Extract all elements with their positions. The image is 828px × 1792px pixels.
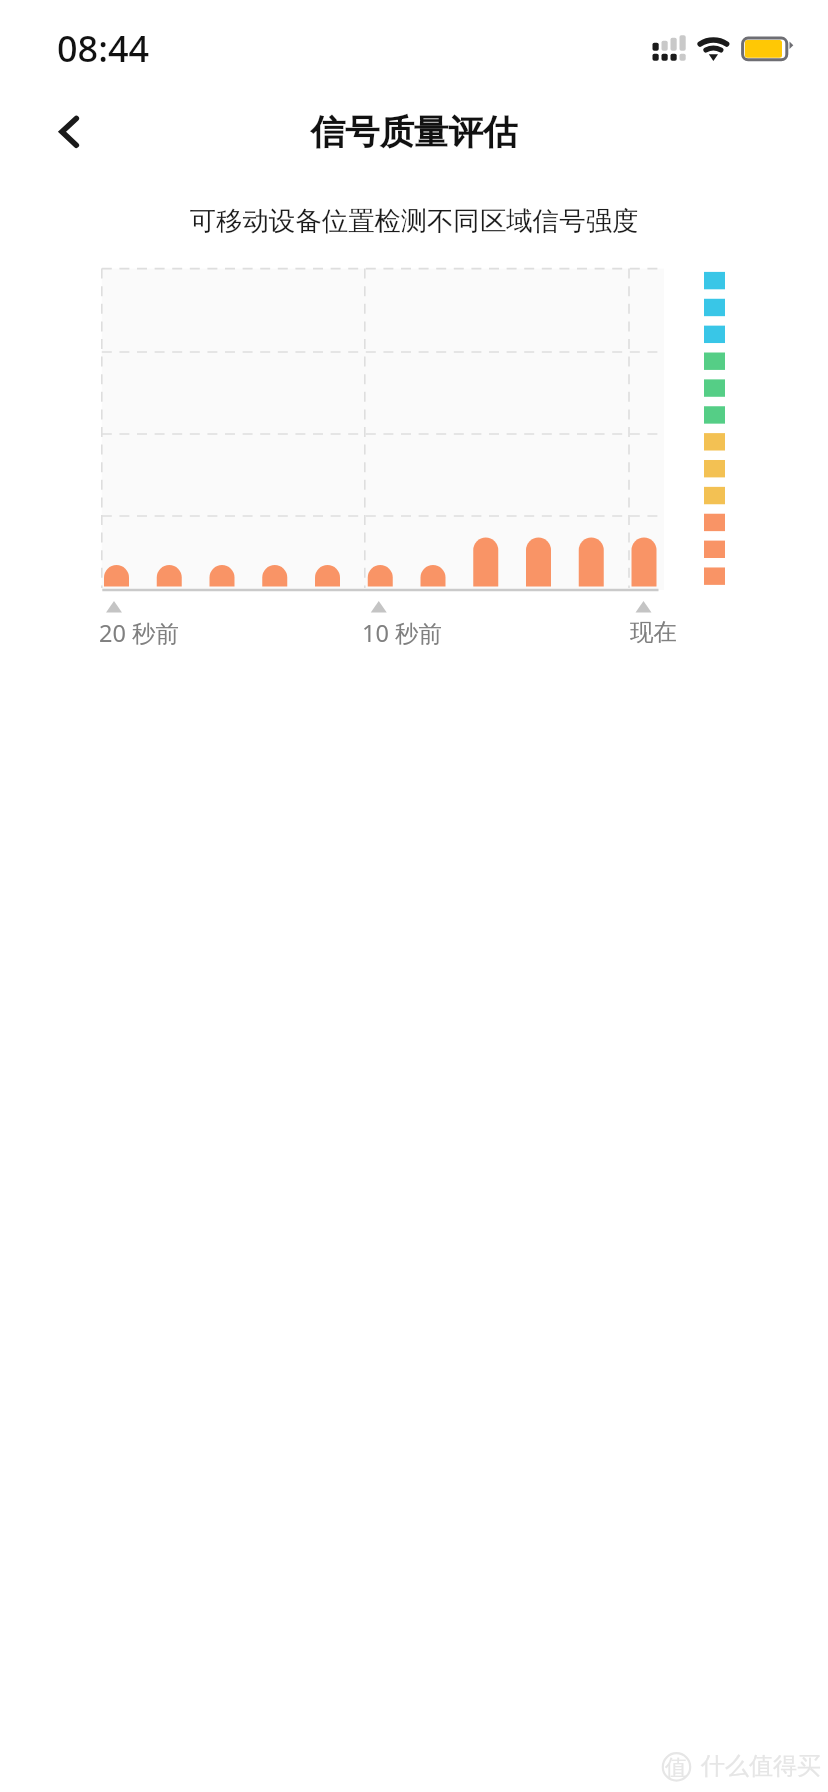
staticText: 10 秒前: [362, 617, 442, 649]
staticText: 08:44: [57, 24, 150, 73]
staticText: 可移动设备位置检测不同区域信号强度: [0, 205, 828, 238]
staticText: 值: [665, 1754, 687, 1782]
staticText: 现在: [630, 617, 677, 647]
button[interactable]: Back: [36, 88, 124, 176]
staticText: 信号质量评估: [0, 111, 828, 154]
staticText: 什么值得买: [701, 1751, 821, 1781]
staticText: 20 秒前: [99, 617, 179, 649]
